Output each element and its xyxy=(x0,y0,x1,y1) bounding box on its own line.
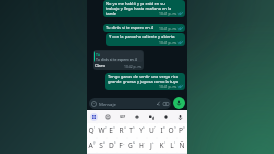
staticText: G xyxy=(128,141,133,150)
staticText: Y xyxy=(139,126,143,135)
button[interactable]: Stickers xyxy=(104,113,112,121)
button[interactable]: Tengo ganas de sentir una verga rica gra… xyxy=(105,73,185,90)
staticText: J xyxy=(150,141,152,150)
other: Attach xyxy=(156,101,161,106)
staticText: T xyxy=(129,126,133,135)
button[interactable]: Y xyxy=(137,123,147,138)
button[interactable]: P xyxy=(177,123,187,138)
button[interactable]: D xyxy=(107,138,117,153)
button[interactable]: Tu dirás si te espero en 4 xyxy=(103,24,185,32)
staticText: No ya me habló y ya está en su trabajo y… xyxy=(106,1,172,16)
staticText: 2 xyxy=(105,126,107,130)
staticText: Y con la panocha caliente y abierta xyxy=(109,34,175,40)
staticText: O xyxy=(168,126,174,135)
staticText: 9 xyxy=(174,126,176,130)
button[interactable]: Theme xyxy=(162,113,170,121)
button[interactable]: Translate xyxy=(147,113,155,121)
button[interactable]: Voice message xyxy=(173,97,185,109)
button[interactable]: Ñ xyxy=(177,138,187,153)
button[interactable]: F xyxy=(117,138,127,153)
staticText: D xyxy=(109,141,114,150)
button[interactable]: O xyxy=(167,123,177,138)
button[interactable]: Emoji xyxy=(89,98,171,109)
button[interactable]: S xyxy=(97,138,107,153)
staticText: K xyxy=(159,141,164,150)
staticText: 3 xyxy=(113,126,115,130)
button[interactable]: W xyxy=(97,123,107,138)
staticText: W xyxy=(98,126,105,135)
staticText: Tú xyxy=(96,52,100,57)
staticText: L xyxy=(170,141,174,150)
button[interactable]: Y con la panocha caliente y abierta xyxy=(106,33,185,46)
staticText: Tu dirás si te espero en 4 xyxy=(106,25,154,31)
staticText: ) xyxy=(174,141,175,145)
staticText: 0 xyxy=(183,126,185,130)
button[interactable]: G xyxy=(127,138,137,153)
staticText: S xyxy=(99,141,103,150)
staticText: U xyxy=(149,126,154,135)
button[interactable]: R xyxy=(117,123,127,138)
button[interactable]: Settings xyxy=(133,113,141,121)
button[interactable]: T xyxy=(127,123,137,138)
button[interactable]: Tú xyxy=(93,50,144,70)
staticText: Mensaje xyxy=(99,101,116,107)
button[interactable]: K xyxy=(157,138,167,153)
button[interactable]: H xyxy=(137,138,147,153)
button[interactable]: Voice input xyxy=(176,113,184,121)
staticText: I xyxy=(160,126,163,135)
staticText: Claro xyxy=(95,63,105,69)
button[interactable]: E xyxy=(107,123,117,138)
button[interactable]: U xyxy=(147,123,157,138)
staticText: H xyxy=(139,141,144,150)
staticText: Tu dirás si te espero en 4 xyxy=(96,57,137,62)
staticText: 10:41 p. m. xyxy=(159,26,177,31)
button[interactable]: Q xyxy=(87,123,97,138)
staticText: + xyxy=(152,141,154,145)
staticText: GIF xyxy=(120,115,126,119)
staticText: P xyxy=(179,126,183,135)
staticText: 6 xyxy=(143,126,145,130)
button[interactable]: A xyxy=(87,138,97,153)
staticText: Q xyxy=(88,126,94,135)
other: Emoji xyxy=(91,101,97,107)
staticText: F xyxy=(119,141,123,150)
staticText: 5 xyxy=(133,126,135,130)
staticText: $ xyxy=(114,141,116,145)
staticText: Tengo ganas de sentir una verga rica gra… xyxy=(108,74,179,84)
staticText: R xyxy=(119,126,124,135)
staticText: A xyxy=(88,141,93,150)
other: Camera xyxy=(163,101,169,107)
staticText: 8 xyxy=(163,126,165,130)
staticText: - xyxy=(144,141,145,145)
button[interactable]: GIF xyxy=(119,113,127,121)
button[interactable]: No ya me habló y ya está en su trabajo y… xyxy=(103,0,185,17)
staticText: 10:42 p. m. xyxy=(124,64,142,69)
staticText: & xyxy=(133,141,136,145)
staticText: E xyxy=(109,126,113,135)
button[interactable]: I xyxy=(157,123,167,138)
staticText: 10:41 p. m. xyxy=(159,84,177,89)
staticText: 4 xyxy=(124,126,126,130)
staticText: 7 xyxy=(154,126,156,130)
staticText: ( xyxy=(164,141,165,145)
staticText: # xyxy=(103,141,105,145)
staticText: _ xyxy=(123,141,125,145)
button[interactable]: L xyxy=(167,138,177,153)
button[interactable]: Google assistant xyxy=(90,113,98,121)
button[interactable]: J xyxy=(147,138,157,153)
staticText: @ xyxy=(93,141,96,145)
staticText: 10:41 p. m. xyxy=(159,40,177,45)
staticText: 1 xyxy=(94,126,96,130)
staticText: 10:41 p. m. xyxy=(159,11,177,16)
staticText: Ñ xyxy=(179,141,185,150)
